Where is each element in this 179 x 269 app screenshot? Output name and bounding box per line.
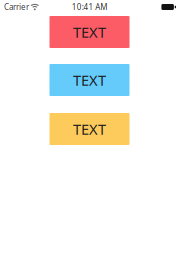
staticText: TEXT bbox=[73, 22, 106, 42]
staticText: TEXT bbox=[73, 119, 106, 139]
button[interactable]: TEXT bbox=[49, 64, 129, 96]
button[interactable]: TEXT bbox=[49, 113, 129, 145]
button[interactable]: TEXT bbox=[49, 16, 129, 48]
staticText: 10:41 AM bbox=[72, 2, 107, 12]
staticText: Carrier bbox=[4, 2, 29, 12]
staticText: TEXT bbox=[73, 70, 106, 90]
